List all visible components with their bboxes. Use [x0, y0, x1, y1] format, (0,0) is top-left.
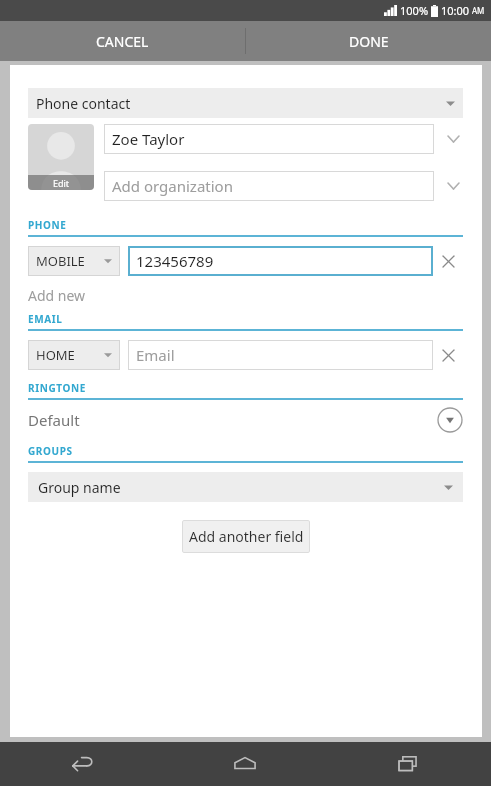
button[interactable]: Add new — [28, 284, 86, 307]
button[interactable]: CANCEL — [0, 21, 245, 61]
staticText: AM — [472, 5, 485, 16]
button[interactable]: Default — [28, 407, 463, 433]
staticText: Zoe Taylor — [112, 129, 185, 149]
staticText: Add new — [28, 286, 86, 305]
staticText: Edit — [53, 177, 70, 189]
staticText: 10:00 — [441, 3, 472, 18]
staticText: GROUPS — [28, 444, 73, 458]
button[interactable]: Expand — [443, 129, 463, 149]
button[interactable]: Recent apps — [327, 742, 491, 786]
button[interactable]: Phone contact — [28, 88, 463, 118]
button[interactable]: Add organization — [104, 171, 434, 201]
button[interactable]: Add another field — [182, 520, 310, 553]
staticText: Default — [28, 410, 80, 430]
button[interactable]: Back — [0, 742, 163, 786]
button[interactable]: Edit photo — [28, 124, 94, 190]
staticText: EMAIL — [28, 312, 63, 326]
button[interactable]: DONE — [246, 21, 491, 61]
button[interactable]: Group name — [28, 472, 463, 502]
staticText: 100% — [400, 3, 429, 18]
staticText: CANCEL — [96, 32, 149, 51]
staticText: PHONE — [28, 218, 67, 232]
staticText: RINGTONE — [28, 381, 86, 395]
button[interactable]: Remove field — [433, 340, 463, 370]
button[interactable]: Zoe Taylor — [104, 124, 434, 154]
button[interactable]: MOBILE — [28, 246, 120, 276]
staticText: Email — [136, 345, 175, 365]
staticText: 123456789 — [136, 251, 214, 271]
button[interactable]: Expand — [443, 176, 463, 196]
staticText: Add another field — [189, 527, 304, 546]
staticText: Add organization — [112, 176, 233, 196]
staticText: DONE — [349, 32, 389, 51]
button[interactable]: Home — [163, 742, 327, 786]
button[interactable]: Remove field — [433, 246, 463, 276]
staticText: HOME — [36, 346, 75, 364]
staticText: MOBILE — [36, 252, 85, 270]
button[interactable]: 123456789 — [128, 246, 433, 276]
button[interactable]: HOME — [28, 340, 120, 370]
button[interactable]: Email — [128, 340, 433, 370]
staticText: Phone contact — [36, 94, 131, 113]
staticText: Group name — [38, 478, 121, 497]
